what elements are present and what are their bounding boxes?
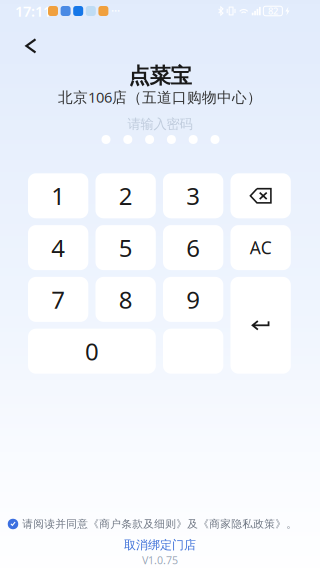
button[interactable]: 0 [28,329,156,374]
staticText: ··· [111,3,120,19]
button[interactable]: 1 [28,173,88,218]
staticText: 9 [186,283,200,315]
staticText: AC [250,236,272,259]
staticText: 7 [51,283,65,315]
staticText: 1 [51,180,65,212]
button[interactable]: Clear [230,225,291,270]
button[interactable]: Back [11,29,51,63]
button[interactable]: 3 [163,173,223,218]
staticText: 0 [85,335,99,367]
button[interactable]: 8 [95,277,156,322]
button[interactable]: 5 [95,225,156,270]
staticText: 8 [119,283,133,315]
staticText: 3 [186,180,200,212]
staticText: 2 [119,180,133,212]
staticText: 点菜宝 [128,63,191,89]
staticText: 5 [119,232,133,264]
button[interactable]: Enter [230,277,291,374]
staticText: 请阅读并同意《商户条款及细则》及《商家隐私政策》。 [22,517,297,530]
staticText: 北京106店（五道口购物中心） [58,87,262,107]
button[interactable]: 6 [163,225,223,270]
staticText: 4 [51,232,65,264]
button[interactable]: 2 [95,173,156,218]
button[interactable]: 7 [28,277,88,322]
staticText: 取消绑定门店 [124,538,196,552]
button[interactable]: 4 [28,225,88,270]
staticText: 请输入密码 [127,116,192,132]
staticText: 82 [268,5,278,17]
button[interactable]: 9 [163,277,223,322]
button[interactable]: Backspace [230,173,291,218]
button[interactable]: 取消绑定门店 [116,534,204,556]
staticText: 6 [186,232,200,264]
staticText: V1.0.75 [142,553,178,567]
staticText: 17:11 [15,1,51,21]
